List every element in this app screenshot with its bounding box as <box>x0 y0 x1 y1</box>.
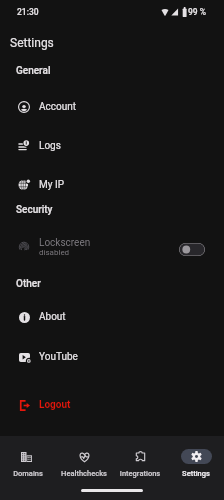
staticText: Healthchecks <box>56 469 112 478</box>
staticText: Other <box>16 278 41 290</box>
staticText: Integrations <box>112 469 168 478</box>
button[interactable]: Integrations <box>112 436 168 460</box>
staticText: Settings <box>168 469 224 478</box>
button[interactable]: Healthchecks <box>56 436 112 460</box>
staticText: Security <box>16 204 53 216</box>
staticText: About <box>39 311 66 323</box>
staticText: Logs <box>39 140 61 152</box>
staticText: Account <box>39 101 77 113</box>
button[interactable]: Lockscreen toggle <box>179 243 205 256</box>
other: Wi-Fi <box>161 8 169 16</box>
button[interactable]: Account <box>0 87 224 126</box>
button[interactable]: Domains <box>0 436 56 460</box>
staticText: Logout <box>39 399 71 411</box>
button[interactable]: Settings <box>168 436 224 460</box>
staticText: General <box>16 65 51 77</box>
staticText: 99 % <box>188 7 207 17</box>
button[interactable]: My IP <box>0 165 224 204</box>
button[interactable]: Logs <box>0 126 224 165</box>
staticText: My IP <box>39 179 64 191</box>
staticText: 21:30 <box>17 7 39 17</box>
staticText: Domains <box>0 469 56 478</box>
staticText: YouTube <box>39 351 78 363</box>
button[interactable]: Logout <box>0 385 224 424</box>
button[interactable]: YouTube <box>0 337 224 376</box>
button[interactable]: About <box>0 297 224 336</box>
button[interactable]: Lockscreen <box>0 226 224 268</box>
staticText: disabled <box>39 248 70 257</box>
staticText: Lockscreen <box>39 237 91 249</box>
staticText: Settings <box>10 36 54 50</box>
